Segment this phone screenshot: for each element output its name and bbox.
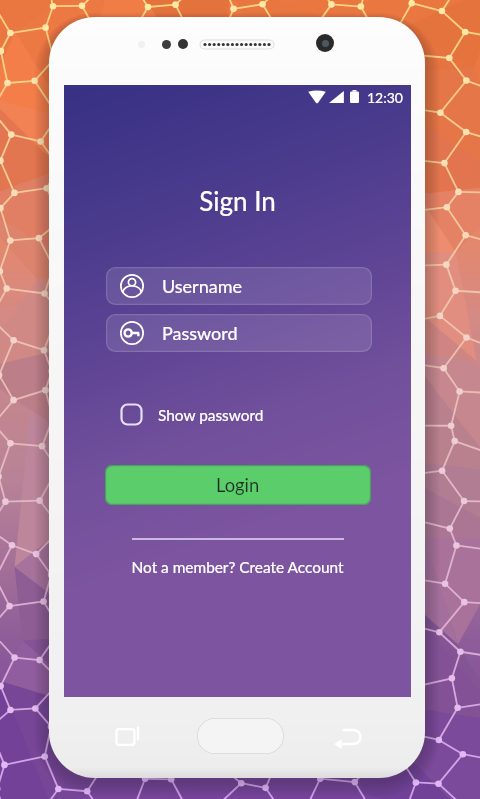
button[interactable]: Recents [114,724,144,750]
staticText: Show password [158,406,264,424]
button[interactable]: Username [106,267,372,305]
staticText: Login [216,474,260,496]
button[interactable]: Not a member? Create Account [64,558,411,576]
button[interactable]: Show password [120,403,264,426]
staticText: Sign In [64,185,411,216]
staticText: Password [162,322,238,344]
button[interactable]: Password [106,314,372,352]
button[interactable]: Home [197,718,284,754]
staticText: Username [162,275,242,297]
staticText: 12:30 [367,89,403,106]
button[interactable]: Login [105,465,371,505]
button[interactable]: Back [334,726,363,748]
